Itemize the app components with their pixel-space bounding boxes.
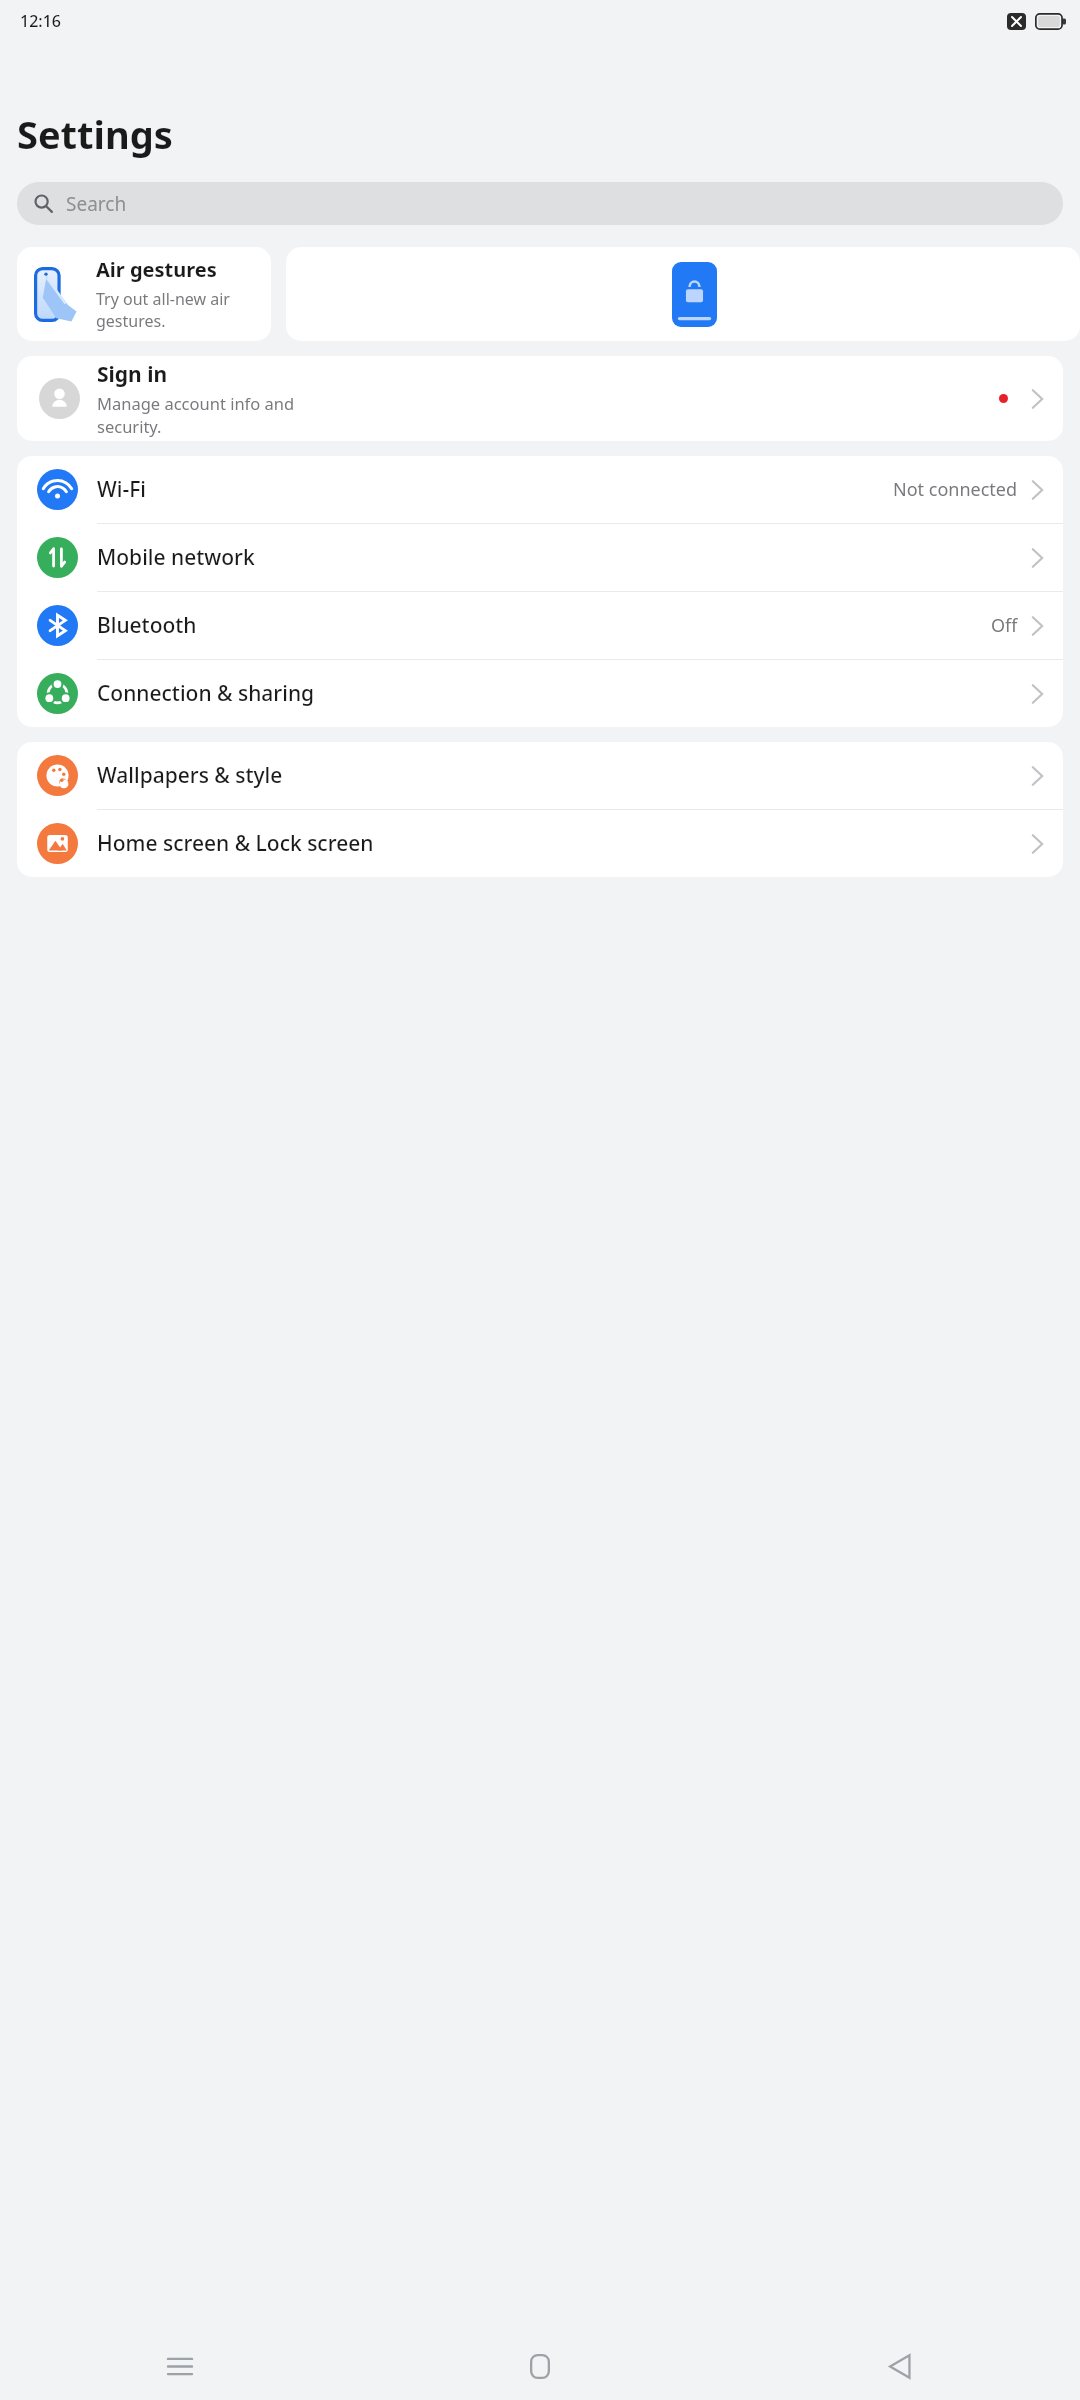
button[interactable]: Wi-Fi [17, 456, 1063, 523]
staticText: Mobile network [97, 543, 1031, 572]
button[interactable]: Air gestures [17, 247, 271, 341]
button[interactable]: Sign in [17, 356, 1063, 441]
button[interactable]: Home screen & Lock screen [17, 810, 1063, 877]
staticText: Bluetooth [97, 611, 991, 640]
staticText: Wallpapers & style [97, 761, 1031, 790]
staticText: Wi-Fi [97, 475, 893, 504]
button[interactable]: Privacy protection [286, 247, 1080, 341]
staticText: 12:16 [20, 10, 61, 32]
staticText: Search [66, 191, 127, 217]
button[interactable]: Connection & sharing [17, 660, 1063, 727]
staticText: Off [991, 613, 1018, 638]
button[interactable]: Back [720, 2332, 1080, 2400]
button[interactable]: Bluetooth [17, 592, 1063, 659]
button[interactable]: Recent apps [0, 2332, 360, 2400]
staticText: Air gestures [96, 256, 217, 283]
staticText: Settings [17, 108, 173, 160]
button[interactable]: Mobile network [17, 524, 1063, 591]
staticText: Sign in [97, 360, 168, 389]
staticText: Home screen & Lock screen [97, 829, 1031, 858]
button[interactable]: Home [360, 2332, 720, 2400]
staticText: Manage account info and security. [97, 392, 295, 438]
staticText: Try out all-new air gestures. [96, 288, 271, 332]
button[interactable]: Search [17, 182, 1063, 225]
button[interactable]: Wallpapers & style [17, 742, 1063, 809]
staticText: Not connected [893, 477, 1018, 502]
staticText: Connection & sharing [97, 679, 1031, 708]
